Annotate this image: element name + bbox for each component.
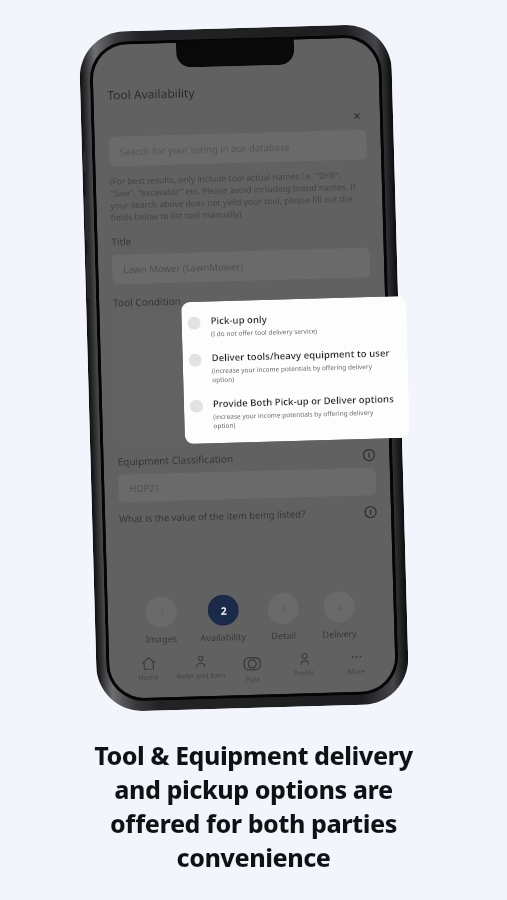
staticText: convenience [176, 840, 331, 874]
staticText: option) [213, 421, 236, 430]
staticText: ✕ [353, 111, 362, 123]
staticText: Tool Availability [107, 84, 195, 103]
staticText: (increase your income potentials by offe… [212, 362, 373, 375]
button[interactable]: 1 [144, 596, 178, 645]
staticText: 3 [280, 602, 287, 616]
staticText: Delivery [322, 627, 358, 640]
staticText: Refer and Earn [176, 671, 226, 682]
staticText: What is the value of the item being list… [119, 507, 306, 525]
staticText: Tool Condition [113, 294, 181, 310]
button[interactable]: Pick-up only [181, 309, 407, 339]
other: Info [362, 448, 376, 462]
staticText: 2 [221, 604, 227, 618]
button[interactable]: Refer and Earn [175, 655, 226, 682]
button[interactable]: HDP21 [118, 467, 377, 503]
button[interactable]: Deliver tools/heavy equipment to user [182, 346, 408, 385]
button[interactable]: Home [123, 656, 174, 683]
staticText: Home [138, 672, 159, 683]
button[interactable]: Close [348, 107, 366, 126]
staticText: Tool & Equipment delivery [94, 738, 413, 772]
button[interactable]: Provide Both Pick-up or Deliver options [184, 392, 409, 431]
button[interactable]: 2 [199, 594, 247, 643]
button[interactable]: 3 [267, 593, 300, 641]
staticText: HDP21 [129, 481, 160, 495]
button[interactable]: Post [227, 653, 278, 686]
staticText: More [347, 667, 366, 677]
staticText: option) [212, 375, 234, 384]
staticText: (I do not offer tool delivery service) [211, 326, 318, 338]
staticText: offered for both parties [110, 806, 397, 840]
staticText: Detail [271, 629, 297, 641]
staticText: and pickup options are [114, 772, 393, 806]
staticText: Profile [293, 668, 316, 679]
staticText: Provide Both Pick-up or Deliver options [213, 392, 394, 410]
staticText: Equipment Classification [117, 451, 234, 468]
button[interactable]: Lawn Mower (LawnMower) [112, 247, 370, 285]
button[interactable]: More [331, 650, 382, 678]
staticText: Search for your listing in our database [120, 141, 291, 158]
staticText: (For best results, only include tool act… [110, 168, 369, 224]
staticText: Deliver tools/heavy equipment to user [211, 346, 390, 364]
staticText: Title [111, 234, 132, 249]
staticText: Pick-up only [210, 313, 268, 327]
button[interactable]: 4 [321, 591, 358, 640]
staticText: Availability [200, 630, 247, 643]
button[interactable]: Profile [279, 652, 330, 679]
staticText: (increase your income potentials by offe… [213, 408, 374, 421]
staticText: Post [246, 675, 261, 685]
staticText: Lawn Mower (LawnMower) [123, 260, 243, 276]
staticText: Images [145, 632, 178, 645]
staticText: 4 [336, 600, 343, 614]
other: Info [364, 505, 377, 519]
button[interactable]: Search for your listing in our database [108, 129, 367, 167]
